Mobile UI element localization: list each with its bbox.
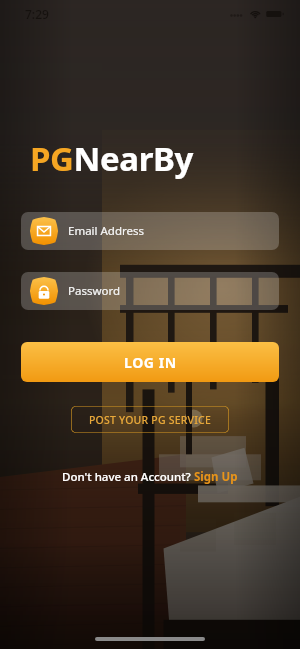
staticText: Don't have an Account? — [62, 469, 194, 485]
staticText: Email Address — [68, 223, 145, 239]
staticText: 7:29 — [25, 6, 49, 22]
staticText: PGNearBy — [30, 136, 194, 181]
button[interactable]: Password — [21, 272, 279, 310]
staticText: Password — [68, 283, 121, 299]
button[interactable]: LOG IN — [21, 342, 279, 382]
staticText: Sign Up — [194, 469, 238, 485]
button[interactable]: Don't have an Account? — [58, 465, 242, 489]
staticText: POST YOUR PG SERVICE — [89, 413, 212, 427]
button[interactable]: Email Address — [21, 212, 279, 250]
button[interactable]: POST YOUR PG SERVICE — [71, 406, 229, 433]
staticText: LOG IN — [124, 353, 177, 372]
